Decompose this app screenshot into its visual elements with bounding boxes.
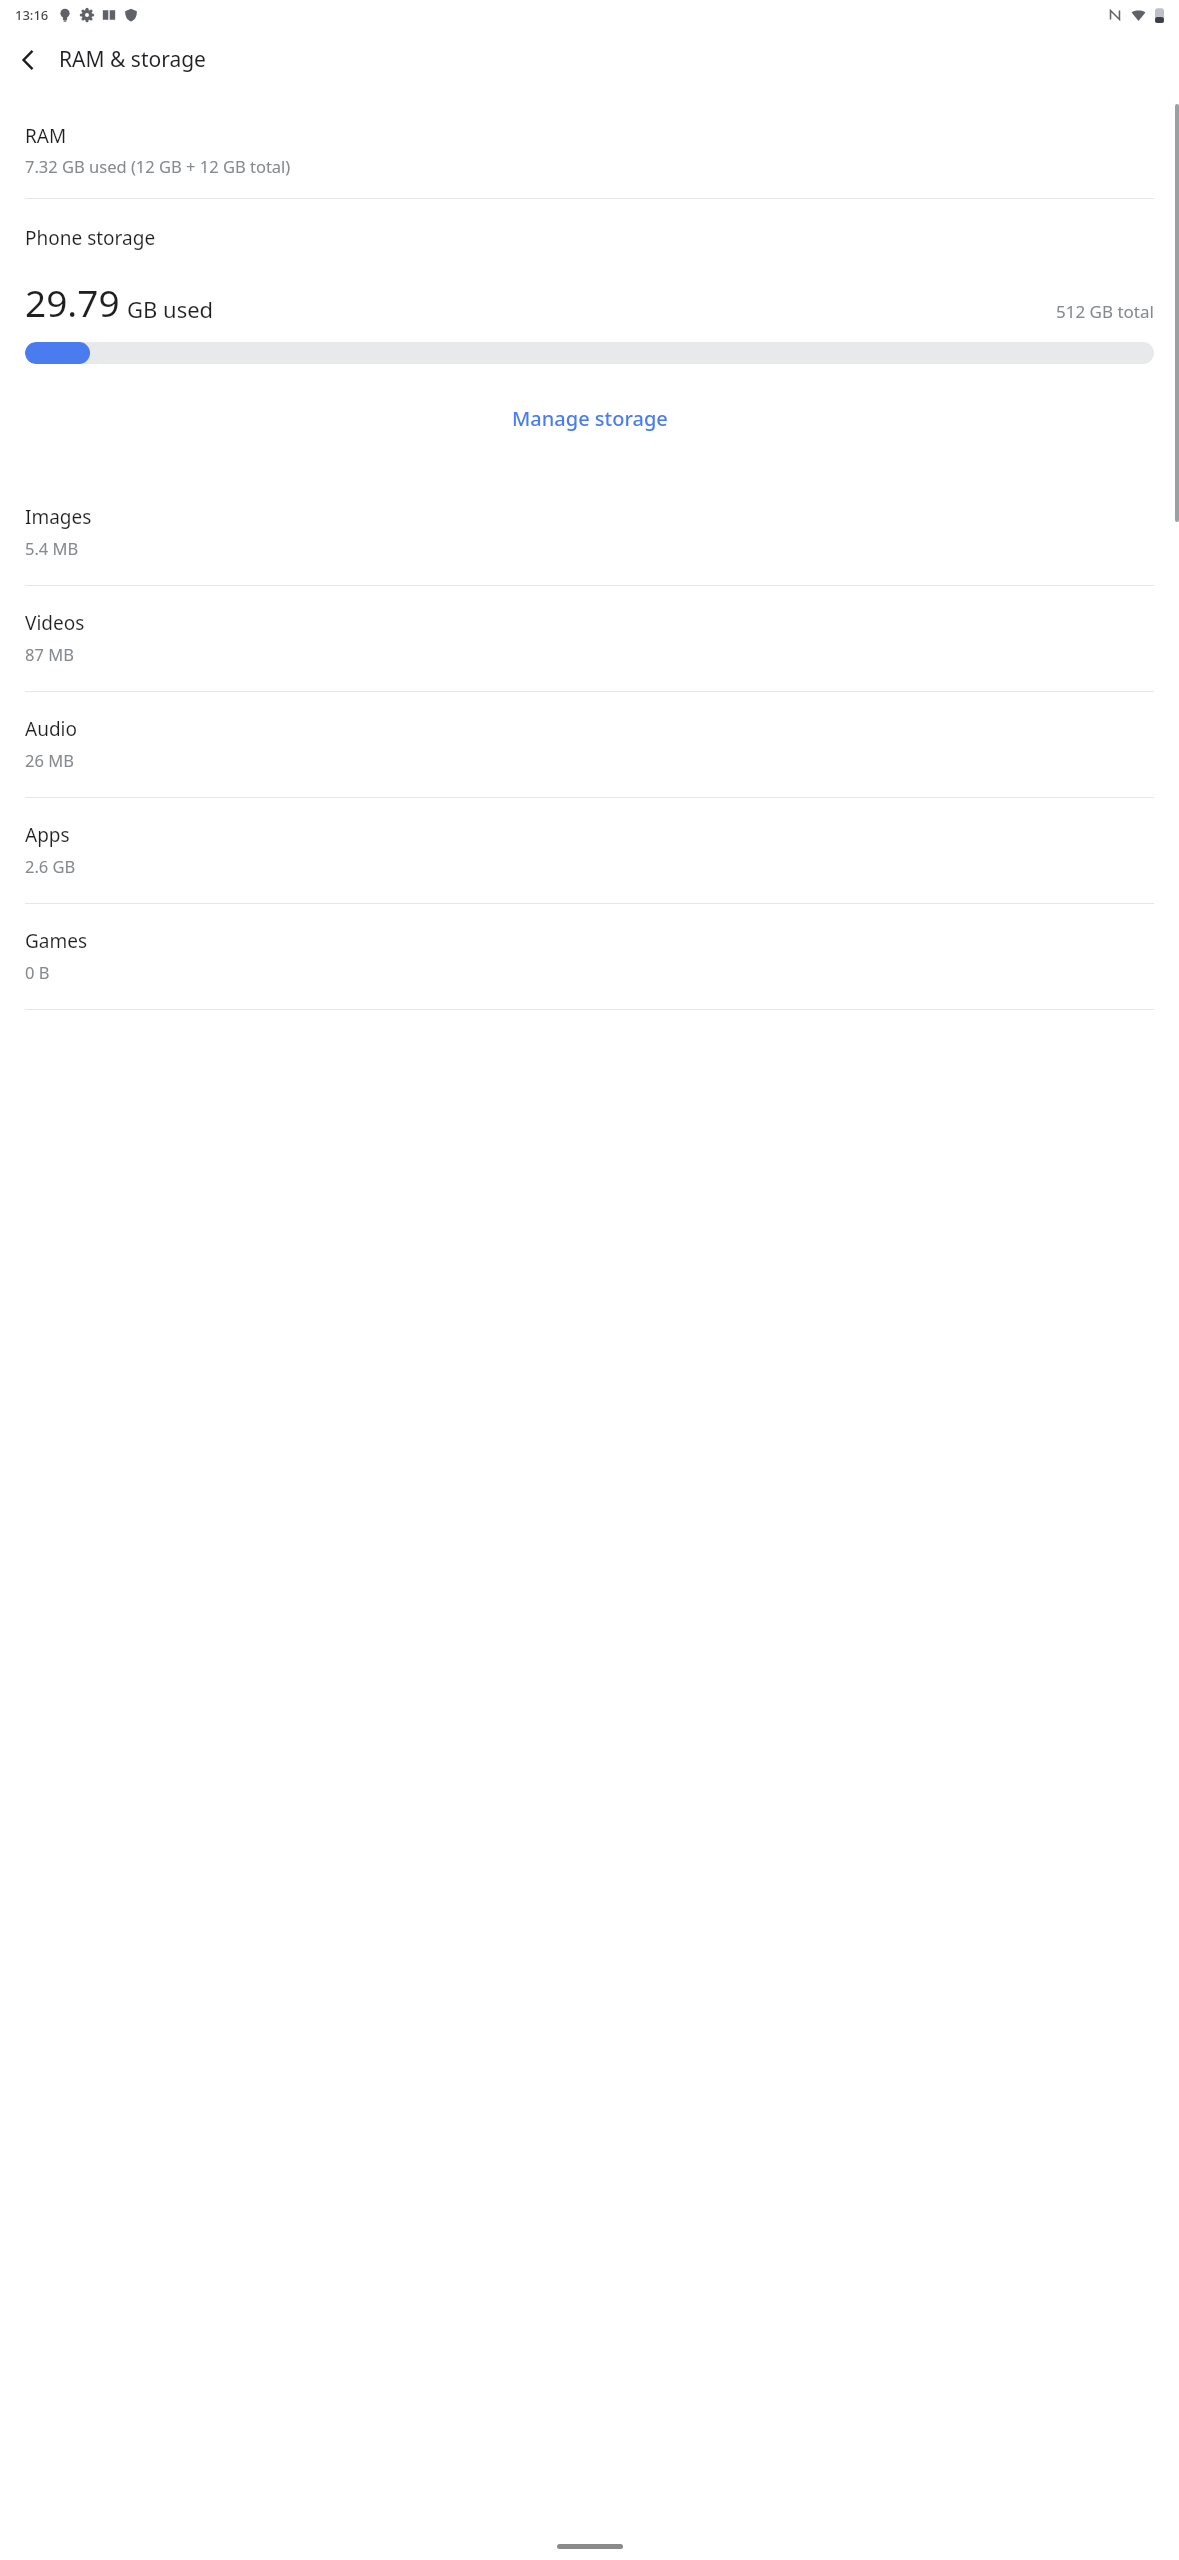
button[interactable]: Images — [0, 480, 1179, 585]
staticText: Audio — [25, 716, 77, 742]
staticText: Images — [25, 504, 92, 530]
staticText: 5.4 MB — [25, 537, 79, 559]
staticText: Apps — [25, 822, 70, 848]
staticText: 512 GB total — [1056, 300, 1154, 323]
staticText: GB used — [127, 294, 214, 324]
staticText: 2.6 GB — [25, 855, 76, 877]
staticText: 13:16 — [15, 6, 49, 24]
button[interactable]: Audio — [0, 692, 1179, 797]
staticText: Phone storage — [25, 225, 156, 251]
button[interactable]: Videos — [0, 586, 1179, 691]
staticText: 0 B — [25, 961, 50, 983]
button[interactable]: Apps — [0, 798, 1179, 903]
button[interactable]: Manage storage — [0, 391, 1179, 445]
button[interactable]: Back — [6, 38, 50, 82]
staticText: 29.79 — [25, 277, 120, 327]
staticText: Videos — [25, 610, 85, 636]
staticText: 26 MB — [25, 749, 74, 771]
button[interactable]: Games — [0, 904, 1179, 1009]
button[interactable]: RAM — [0, 123, 1179, 177]
staticText: Manage storage — [512, 405, 668, 432]
staticText: RAM & storage — [59, 45, 206, 74]
staticText: 7.32 GB used (12 GB + 12 GB total) — [25, 155, 291, 177]
staticText: RAM — [25, 123, 67, 149]
staticText: Games — [25, 928, 88, 954]
staticText: 87 MB — [25, 643, 74, 665]
